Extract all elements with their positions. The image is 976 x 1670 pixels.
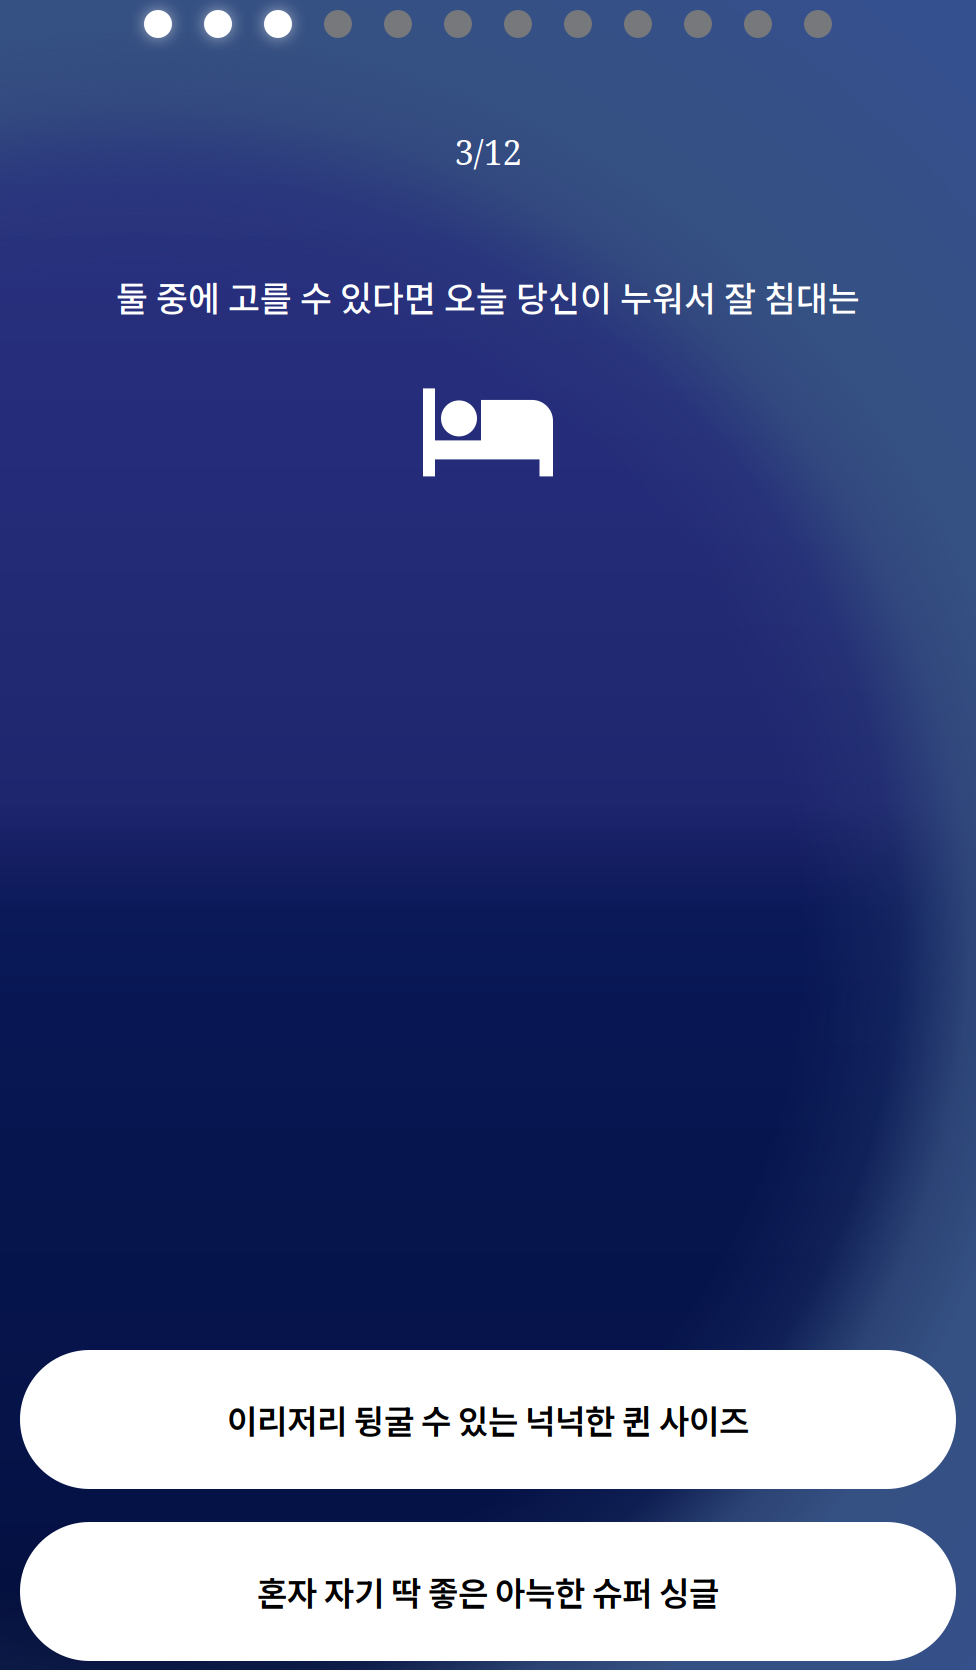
staticText: 3/12 bbox=[454, 128, 521, 175]
button[interactable]: 혼자 자기 딱 좋은 아늑한 슈퍼 싱글 bbox=[20, 1522, 956, 1661]
button[interactable]: 이리저리 뒹굴 수 있는 넉넉한 퀸 사이즈 bbox=[20, 1350, 956, 1489]
staticText: 혼자 자기 딱 좋은 아늑한 슈퍼 싱글 bbox=[257, 1568, 719, 1615]
staticText: 둘 중에 고를 수 있다면 오늘 당신이 누워서 잘 침대는 bbox=[116, 271, 860, 321]
staticText: 이리저리 뒹굴 수 있는 넉넉한 퀸 사이즈 bbox=[227, 1396, 749, 1443]
